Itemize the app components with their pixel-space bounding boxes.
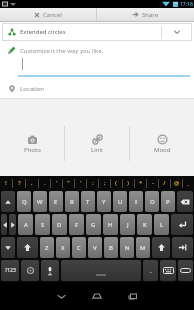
staticText: I xyxy=(135,198,138,206)
button[interactable]: ? xyxy=(13,176,25,190)
button[interactable]: ( xyxy=(111,176,122,190)
button[interactable]: Z xyxy=(40,237,54,258)
button[interactable] xyxy=(1,237,15,258)
staticText: L xyxy=(160,221,164,229)
button[interactable]: R xyxy=(65,191,79,212)
button[interactable]: ! xyxy=(0,176,12,190)
button[interactable] xyxy=(178,260,193,281)
button[interactable]: B xyxy=(104,237,118,258)
staticText: Z xyxy=(45,244,49,252)
button[interactable]: Mood xyxy=(130,126,194,161)
button[interactable]: : xyxy=(87,176,98,190)
button[interactable] xyxy=(21,260,39,281)
staticText: Extended circles xyxy=(20,28,66,36)
button[interactable]: Cancel xyxy=(0,8,96,21)
staticText: " xyxy=(67,179,70,187)
staticText: Share xyxy=(142,11,159,19)
button[interactable]: @ xyxy=(171,176,182,190)
staticText: W xyxy=(37,198,43,206)
button[interactable]: Photo xyxy=(0,126,64,161)
button[interactable]: O xyxy=(145,191,159,212)
staticText: X xyxy=(61,244,65,252)
button[interactable]: T xyxy=(81,191,95,212)
button[interactable] xyxy=(56,291,66,301)
button[interactable]: S xyxy=(35,214,50,235)
staticText: G xyxy=(91,221,96,229)
staticText: ' xyxy=(80,179,82,187)
staticText: K xyxy=(143,221,147,229)
staticText: Y xyxy=(102,198,106,206)
button[interactable] xyxy=(61,260,141,281)
button[interactable]: ; xyxy=(99,176,110,190)
button[interactable]: ' xyxy=(51,176,62,190)
button[interactable]: I xyxy=(129,191,143,212)
staticText: R xyxy=(70,198,74,206)
button[interactable]: J xyxy=(120,214,135,235)
staticText: * xyxy=(139,179,143,187)
staticText: J xyxy=(127,221,129,229)
button[interactable]: " xyxy=(63,176,74,190)
staticText: ? xyxy=(18,179,21,187)
button[interactable] xyxy=(9,214,16,235)
button[interactable] xyxy=(92,291,102,301)
button[interactable]: W xyxy=(33,191,47,212)
button[interactable]: C xyxy=(72,237,86,258)
button[interactable]: - xyxy=(147,176,158,190)
staticText: , xyxy=(31,179,33,187)
button[interactable]: Y xyxy=(97,191,111,212)
button[interactable]: ) xyxy=(123,176,134,190)
button[interactable] xyxy=(1,214,7,235)
button[interactable]: L xyxy=(154,214,169,235)
staticText: Link xyxy=(91,146,103,154)
button[interactable] xyxy=(128,291,138,301)
button[interactable]: P xyxy=(161,191,175,212)
staticText: Customize it the way you like. xyxy=(20,47,104,55)
button[interactable] xyxy=(41,260,59,281)
button[interactable] xyxy=(171,214,193,235)
button[interactable]: X xyxy=(56,237,70,258)
button[interactable]: . xyxy=(143,260,158,281)
button[interactable] xyxy=(172,237,193,258)
button[interactable]: A xyxy=(18,214,33,235)
button[interactable]: G xyxy=(86,214,101,235)
button[interactable]: Q xyxy=(17,191,31,212)
staticText: O xyxy=(150,198,155,206)
staticText: Location xyxy=(20,85,45,93)
staticText: U xyxy=(118,198,123,206)
button[interactable]: * xyxy=(135,176,146,190)
button[interactable]: / xyxy=(159,176,170,190)
button[interactable] xyxy=(1,191,15,212)
staticText: - xyxy=(152,179,154,187)
button[interactable]: U xyxy=(113,191,127,212)
button[interactable]: _ xyxy=(183,176,194,190)
staticText: ! xyxy=(5,179,7,187)
button[interactable]: M xyxy=(136,237,150,258)
staticText: S xyxy=(41,221,45,229)
button[interactable]: F xyxy=(69,214,84,235)
staticText: Q xyxy=(22,198,27,206)
button[interactable]: . xyxy=(39,176,50,190)
button[interactable]: ?123 xyxy=(1,260,19,281)
button[interactable]: V xyxy=(88,237,102,258)
button[interactable]: D xyxy=(52,214,67,235)
button[interactable]: ' xyxy=(75,176,86,190)
button[interactable] xyxy=(160,260,176,281)
button[interactable]: Extended circles xyxy=(2,23,192,41)
staticText: ( xyxy=(115,179,118,187)
button[interactable]: Share xyxy=(97,8,194,21)
button[interactable]: Location xyxy=(0,80,194,99)
button[interactable]: K xyxy=(137,214,152,235)
button[interactable] xyxy=(152,237,170,258)
button[interactable]: H xyxy=(103,214,118,235)
staticText: A xyxy=(24,221,28,229)
button[interactable]: Link xyxy=(65,126,129,161)
staticText: @ xyxy=(174,179,180,187)
button[interactable]: , xyxy=(26,176,38,190)
button[interactable] xyxy=(17,237,38,258)
button[interactable]: E xyxy=(49,191,63,212)
staticText: P xyxy=(166,198,170,206)
staticText: Cancel xyxy=(43,11,62,19)
staticText: V xyxy=(93,244,97,252)
button[interactable]: N xyxy=(120,237,134,258)
button[interactable] xyxy=(177,191,193,212)
